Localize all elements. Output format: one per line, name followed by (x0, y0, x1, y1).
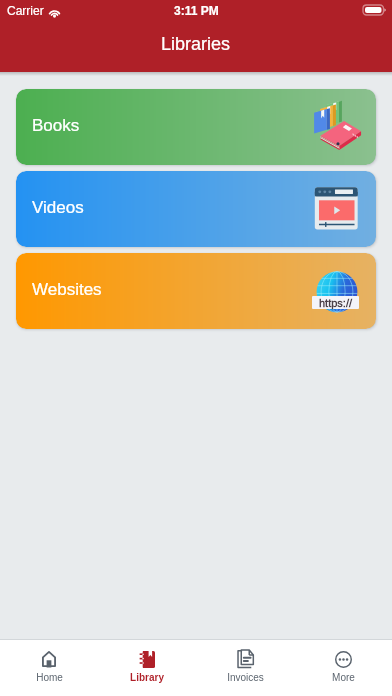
button[interactable]: Books (16, 89, 376, 165)
button[interactable]: Videos (16, 171, 376, 247)
button[interactable]: Library (98, 640, 196, 683)
staticText: Videos (32, 198, 84, 217)
staticText: 3:11 PM (174, 4, 219, 17)
button[interactable]: More (294, 640, 392, 683)
staticText: Websites (32, 280, 102, 299)
staticText: https:// (319, 297, 353, 309)
button[interactable]: Home (0, 640, 98, 683)
button[interactable]: Websites (16, 253, 376, 329)
button[interactable]: Invoices (196, 640, 294, 683)
staticText: Library (130, 672, 164, 683)
staticText: Invoices (227, 672, 264, 683)
staticText: Books (32, 116, 80, 135)
staticText: Carrier (7, 4, 44, 17)
staticText: Home (36, 672, 63, 683)
staticText: More (332, 672, 355, 683)
staticText: Libraries (161, 34, 231, 54)
